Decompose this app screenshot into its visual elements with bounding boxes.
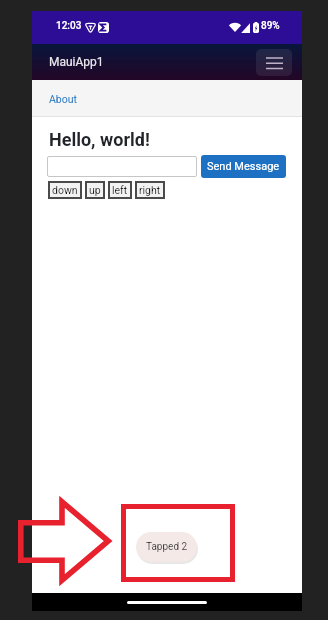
staticText: Send Message bbox=[207, 160, 280, 173]
staticText: up bbox=[89, 184, 101, 196]
button[interactable]: right bbox=[135, 181, 165, 199]
staticText: down bbox=[52, 184, 78, 196]
button[interactable]: Send Message bbox=[201, 155, 286, 178]
button[interactable]: up bbox=[85, 181, 105, 199]
button[interactable]: Tapped 2 bbox=[136, 532, 197, 562]
staticText: left bbox=[112, 184, 128, 196]
staticText: Tapped 2 bbox=[146, 541, 188, 553]
staticText: MauiApp1 bbox=[49, 55, 104, 69]
staticText: 89% bbox=[261, 20, 280, 32]
button[interactable]: down bbox=[48, 181, 82, 199]
staticText: 12:03 bbox=[56, 20, 82, 32]
staticText: Hello, world! bbox=[49, 129, 150, 150]
button[interactable]: left bbox=[108, 181, 132, 199]
button[interactable]: Menu bbox=[256, 49, 292, 76]
button[interactable]: About bbox=[49, 93, 77, 105]
staticText: right bbox=[139, 184, 161, 196]
